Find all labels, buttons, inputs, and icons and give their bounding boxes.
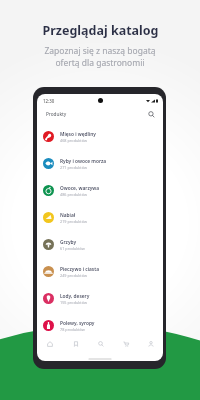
button[interactable]: Ryby i owoce morza <box>37 150 163 177</box>
staticText: Pieczywo i ciasta <box>60 266 99 273</box>
button[interactable]: Mięso i wędliny <box>37 123 163 150</box>
staticText: 12:30 <box>43 98 55 104</box>
staticText: Ryby i owoce morza <box>60 158 107 165</box>
staticText: Mięso i wędliny <box>60 131 96 138</box>
button[interactable]: Cart <box>113 333 138 355</box>
staticText: 468 produktów <box>60 138 87 143</box>
button[interactable]: Nabiał <box>37 204 163 231</box>
staticText: 249 produktów <box>60 273 87 278</box>
staticText: Przeglądaj katalog <box>42 22 159 39</box>
button[interactable]: Polewy, syropy <box>37 312 163 339</box>
button[interactable]: Profile <box>138 333 163 355</box>
staticText: Polewy, syropy <box>60 320 95 327</box>
staticText: Grzyby <box>60 239 77 246</box>
staticText: 155 produktów <box>60 300 87 305</box>
staticText: 61 produktów <box>60 246 85 251</box>
button[interactable]: Home <box>37 333 63 355</box>
button[interactable]: Saved <box>63 333 88 355</box>
staticText: 271 produktów <box>60 165 87 170</box>
staticText: Owoce, warzywa <box>60 185 100 192</box>
staticText: Lody, desery <box>60 293 90 300</box>
staticText: 78 produktów <box>60 327 85 332</box>
staticText: Nabiał <box>60 212 76 219</box>
staticText: Produkty <box>46 111 67 117</box>
staticText: 219 produktów <box>60 219 87 224</box>
button[interactable]: Grzyby <box>37 231 163 258</box>
button[interactable]: Owoce, warzywa <box>37 177 163 204</box>
button[interactable]: Search <box>146 109 157 120</box>
button[interactable]: Lody, desery <box>37 285 163 312</box>
button[interactable]: Search <box>88 333 113 355</box>
staticText: Zapoznaj się z naszą bogatą ofertą dla g… <box>44 45 156 69</box>
staticText: 486 produktów <box>60 192 87 197</box>
button[interactable]: Pieczywo i ciasta <box>37 258 163 285</box>
